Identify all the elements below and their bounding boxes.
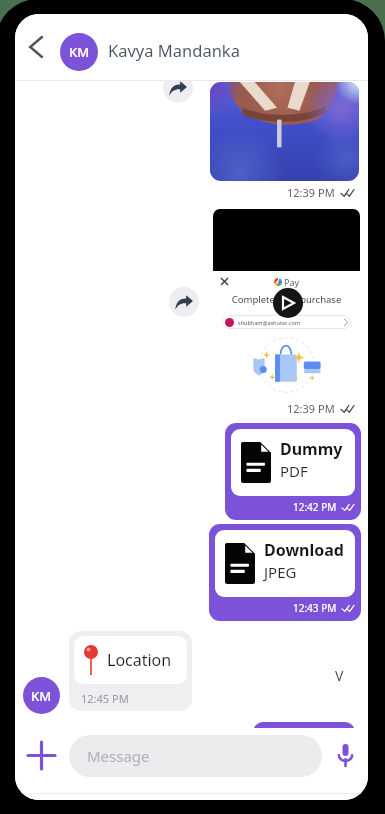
staticText: 12:43 PM [293,601,337,615]
staticText: 12:42 PM [293,500,337,514]
staticText: Complete your purchase [213,293,360,306]
button[interactable]: Location [69,631,192,711]
staticText: Dummy [280,438,343,460]
staticText: JPEG [264,562,297,582]
button[interactable]: KM [23,677,60,714]
staticText: 12:45 PM [81,691,129,706]
button[interactable]: Dummy [225,423,361,520]
staticText: KM [31,687,52,705]
button[interactable]: shubham@ashutec.com [222,315,351,329]
button[interactable]: Voice message [327,737,363,773]
staticText: Message [87,746,150,766]
staticText: KM [69,43,90,61]
button[interactable]: Pay [213,209,360,401]
button[interactable]: KM [60,33,98,71]
staticText: 12:39 PM [287,401,335,416]
staticText: 12:39 PM [287,185,335,200]
button[interactable]: Forward [169,287,199,317]
button[interactable]: Play video [273,288,303,318]
staticText: V [335,666,344,685]
staticText: Kavya Mandanka [108,39,240,61]
button[interactable]: Download [209,524,361,621]
staticText: Pay [284,276,300,288]
button[interactable] [210,82,359,181]
staticText: shubham@ashutec.com [238,319,301,326]
staticText: Download [264,539,344,561]
button[interactable]: Forward [163,73,193,103]
button[interactable]: Message [69,735,322,777]
button[interactable]: Add attachment [23,737,59,773]
staticText: Location [107,649,172,671]
button[interactable]: Back [17,29,53,65]
staticText: PDF [280,461,308,481]
